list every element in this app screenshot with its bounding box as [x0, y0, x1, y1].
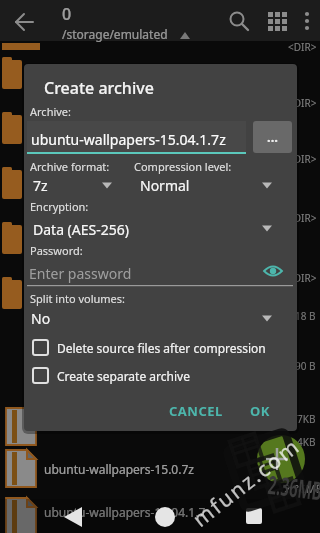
- staticText: <DIR>: [288, 96, 317, 110]
- button[interactable]: [27, 307, 292, 331]
- staticText: Archive:: [30, 104, 72, 119]
- button[interactable]: [29, 366, 289, 384]
- button[interactable]: [27, 121, 246, 154]
- staticText: Data (AES-256): [33, 220, 129, 239]
- staticText: Delete source files after compression: [57, 340, 266, 356]
- staticText: ubuntu-wallpapers-15.0.7z: [44, 461, 194, 477]
- staticText: 2.36MB: [284, 481, 320, 496]
- staticText: /storage/emulated: [62, 26, 168, 42]
- staticText: <DIR>: [288, 40, 317, 54]
- button[interactable]: ...: [253, 121, 292, 153]
- staticText: 4KB: [297, 435, 316, 449]
- button[interactable]: OK: [238, 398, 282, 424]
- button[interactable]: [40, 499, 120, 533]
- staticText: Enter password: [29, 264, 132, 283]
- staticText: mfunz.com: [187, 431, 306, 533]
- staticText: 2.36MB: [266, 467, 320, 507]
- staticText: Compression level:: [134, 159, 232, 174]
- staticText: Normal: [140, 176, 190, 195]
- staticText: Create archive: [44, 77, 154, 99]
- staticText: ubuntu-wallpapers-15.04.1.7z: [31, 130, 226, 149]
- button[interactable]: [27, 174, 115, 198]
- staticText: CANCEL: [169, 402, 223, 420]
- staticText: Encryption:: [30, 199, 89, 214]
- button[interactable]: [125, 499, 205, 533]
- staticText: Create separate archive: [57, 368, 190, 384]
- button[interactable]: [0, 0, 320, 41]
- button[interactable]: [134, 174, 292, 198]
- staticText: OK: [250, 402, 270, 420]
- button[interactable]: [29, 338, 289, 356]
- staticText: 90 B: [295, 359, 316, 373]
- staticText: 18 B: [295, 309, 316, 323]
- staticText: Archive format:: [30, 159, 110, 174]
- staticText: 7KB: [297, 412, 316, 426]
- staticText: ubuntu-wallpapers-15.04.1.7: [44, 504, 206, 520]
- button[interactable]: [210, 499, 290, 533]
- staticText: <DIR>: [288, 271, 317, 285]
- staticText: Password:: [30, 243, 83, 258]
- staticText: No: [31, 309, 51, 328]
- staticText: <DIR>: [288, 152, 317, 166]
- button[interactable]: [27, 260, 292, 286]
- staticText: 7z: [33, 176, 48, 195]
- staticText: Split into volumes:: [30, 291, 126, 306]
- staticText: ...: [267, 128, 278, 146]
- button[interactable]: CANCEL: [155, 398, 237, 424]
- button[interactable]: [27, 216, 292, 240]
- staticText: 0: [62, 3, 72, 25]
- staticText: <DIR>: [288, 211, 317, 225]
